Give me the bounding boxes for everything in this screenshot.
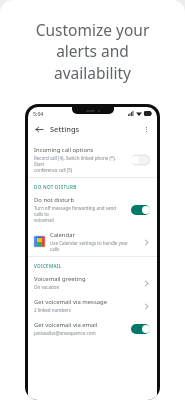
staticText: Get voicemail via message [34,298,107,306]
button[interactable]: Back [33,123,45,135]
staticText: Customize your alerts and availability [0,19,185,83]
button[interactable]: Get voicemail via email [28,317,157,340]
staticText: Incoming call options [34,146,94,154]
staticText: Calendar [50,231,75,239]
staticText: Voicemail greeting [34,275,86,283]
staticText: 2 linked numbers [34,307,71,313]
button[interactable]: Toggle on [130,323,151,335]
button[interactable]: Toggle on [130,204,151,216]
button[interactable]: Open [141,301,151,311]
staticText: janicealiss@onsequence.com [34,330,96,336]
button[interactable]: Incoming call options [28,142,157,177]
button[interactable]: Open [141,278,151,288]
button[interactable]: Open [141,237,151,247]
staticText: Do not disturb [34,196,75,204]
staticText: Use Calendar settings to handle your cal… [50,240,137,252]
staticText: Settings [50,124,80,134]
staticText: DO NOT DISTURB [34,184,77,190]
staticText: On vacation [34,284,60,290]
staticText: Turn off message forwarding and send cal… [34,205,126,223]
staticText: VOICEMAIL [34,263,62,269]
staticText: Record call (4), Switch linked phone (*)… [34,155,126,173]
button[interactable]: Do not disturb [28,192,157,227]
button[interactable]: Toggle off [130,154,151,166]
staticText: Get voicemail via email [34,321,98,329]
staticText: 5:04 [33,110,44,117]
button[interactable]: Calendar [28,227,157,256]
button[interactable]: Voicemail greeting [28,271,157,294]
button[interactable]: Get voicemail via message [28,294,157,317]
button[interactable]: More options [140,123,152,135]
